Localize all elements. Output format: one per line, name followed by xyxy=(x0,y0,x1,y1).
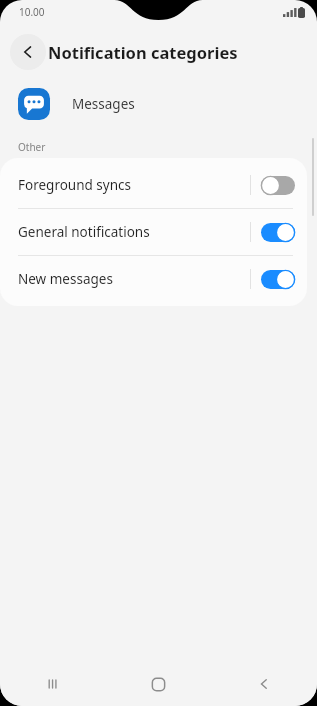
staticText: Foreground syncs xyxy=(18,176,250,194)
button[interactable]: Messages xyxy=(0,80,317,128)
staticText: New messages xyxy=(18,270,250,288)
button[interactable]: General notifications xyxy=(0,209,307,255)
button[interactable]: Home xyxy=(105,662,211,706)
staticText: General notifications xyxy=(18,223,250,241)
button[interactable]: On xyxy=(261,270,295,289)
button[interactable]: Back xyxy=(10,34,46,70)
button[interactable]: On xyxy=(261,223,295,242)
button[interactable]: Off xyxy=(261,176,295,195)
staticText: Other xyxy=(18,140,46,154)
button[interactable]: New messages xyxy=(0,256,307,302)
button[interactable]: Recents xyxy=(0,662,105,706)
staticText: Messages xyxy=(72,95,135,113)
staticText: 10.00 xyxy=(19,5,45,19)
button[interactable]: Foreground syncs xyxy=(0,162,307,208)
staticText: Notification categories xyxy=(48,41,238,63)
button[interactable]: Back xyxy=(211,662,317,706)
